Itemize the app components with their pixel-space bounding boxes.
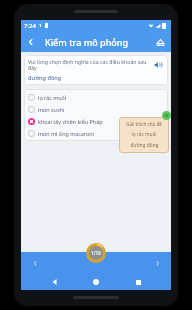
button[interactable]: món mì ống macaroni (24, 127, 168, 139)
button[interactable]: Report (150, 32, 170, 52)
button[interactable]: Hint (162, 111, 171, 120)
button[interactable]: Back (47, 274, 63, 290)
staticText: món sushi (38, 106, 65, 113)
button[interactable]: món sushi (24, 103, 168, 115)
staticText: đường đông (130, 142, 159, 149)
staticText: khoai tây chiên kiểu Pháp (38, 118, 103, 125)
staticText: lọ rắc muối (131, 131, 157, 138)
button[interactable]: Home (88, 274, 104, 290)
button[interactable]: Recents (130, 274, 146, 290)
button[interactable]: khoai tây chiên kiểu Pháp (24, 115, 168, 127)
button[interactable]: Previous (27, 255, 43, 271)
staticText: 7:24 (24, 22, 36, 30)
staticText: món mì ống macaroni (38, 130, 94, 137)
button[interactable]: Next (149, 255, 165, 271)
staticText: Kiểm tra mô phỏng (45, 36, 129, 48)
staticText: đường đông (28, 74, 62, 82)
staticText: Giải thích chủ đề (126, 121, 162, 127)
button[interactable]: Giải thích chủ đề (119, 117, 169, 153)
button[interactable]: Play audio (151, 58, 164, 71)
button[interactable]: Progress 1 of 10 (86, 243, 106, 263)
staticText: 1/10 (91, 250, 101, 256)
button[interactable]: Vui lòng chọn định nghĩa của các điều kh… (24, 55, 168, 85)
staticText: Vui lòng chọn định nghĩa của các điều kh… (28, 58, 151, 72)
staticText: lọ rắc muối (38, 94, 67, 101)
button[interactable]: lọ rắc muối (24, 91, 168, 103)
button[interactable]: Back (21, 32, 41, 52)
